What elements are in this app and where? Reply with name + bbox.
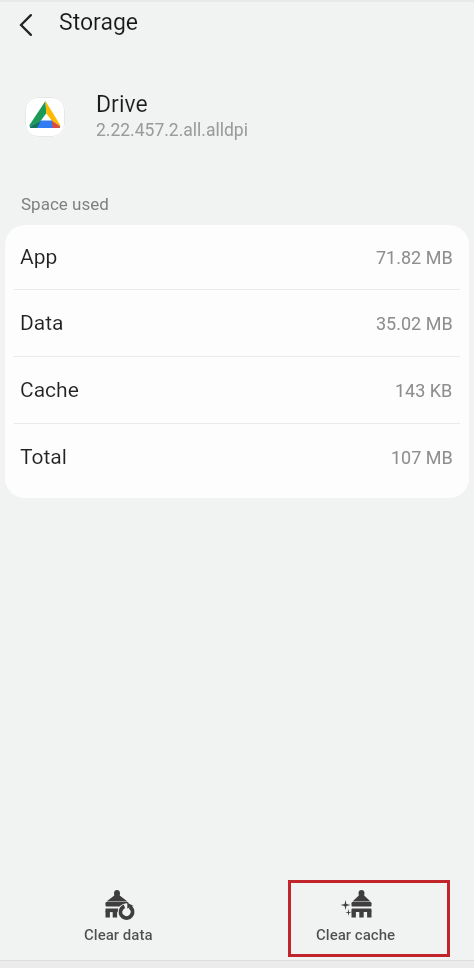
staticText: Clear data bbox=[84, 926, 153, 944]
staticText: Data bbox=[20, 311, 64, 336]
staticText: 143 KB bbox=[395, 380, 453, 401]
button[interactable]: Clear data bbox=[0, 870, 237, 968]
button[interactable]: Total bbox=[5, 424, 469, 490]
staticText: 35.02 MB bbox=[376, 313, 453, 334]
staticText: Storage bbox=[59, 9, 139, 36]
staticText: Total bbox=[20, 445, 67, 470]
staticText: Clear cache bbox=[316, 926, 396, 944]
staticText: Cache bbox=[20, 378, 79, 403]
staticText: 107 MB bbox=[391, 447, 453, 468]
staticText: 2.22.457.2.all.alldpi bbox=[96, 120, 248, 141]
button[interactable]: Clear cache bbox=[237, 870, 474, 968]
button[interactable]: App bbox=[5, 225, 469, 289]
staticText: Space used bbox=[21, 194, 109, 214]
button[interactable] bbox=[8, 5, 48, 45]
staticText: Drive bbox=[96, 91, 148, 118]
button[interactable]: Data bbox=[5, 290, 469, 356]
staticText: 71.82 MB bbox=[376, 247, 453, 268]
staticText: App bbox=[20, 245, 58, 270]
button[interactable]: Cache bbox=[5, 357, 469, 423]
